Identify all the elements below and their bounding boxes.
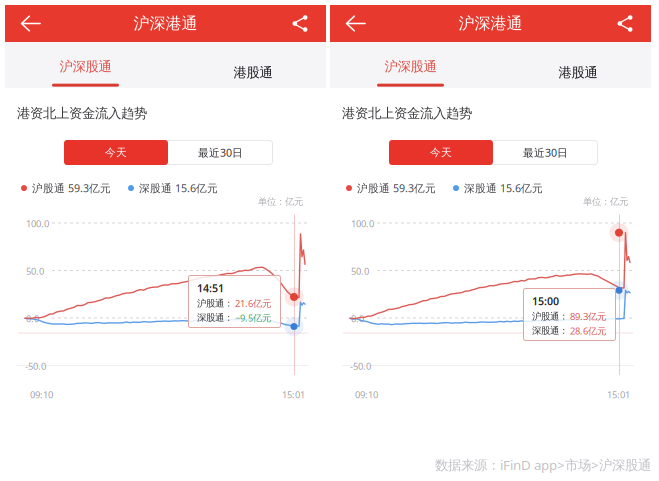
staticText: 50.0 [351, 265, 369, 277]
staticText: 港股通 [233, 64, 272, 81]
button[interactable]: 最近30日 [168, 140, 273, 165]
staticText: 沪深港通 [133, 14, 197, 33]
staticText: 单位：亿元 [583, 196, 628, 207]
button[interactable]: Back [330, 5, 382, 42]
staticText: -50.0 [25, 360, 46, 372]
staticText: 沪深股通 [59, 58, 111, 75]
staticText: 沪深港通 [458, 14, 522, 33]
staticText: 0.0 [351, 312, 364, 325]
staticText: 深股通： [197, 312, 233, 323]
staticText: 50.0 [26, 265, 44, 277]
staticText: 港资北上资金流入趋势 [17, 105, 147, 121]
staticText: 沪深股通 [384, 58, 436, 75]
staticText: 沪股通 59.3亿元 [357, 181, 436, 195]
button[interactable]: Back [5, 5, 57, 42]
staticText: 15:01 [282, 388, 305, 401]
staticText: 沪股通 59.3亿元 [32, 181, 111, 195]
staticText: 沪股通： [197, 298, 233, 309]
staticText: 15:01 [607, 388, 630, 401]
staticText: 港资北上资金流入趋势 [342, 105, 472, 121]
staticText: 0.0 [26, 312, 39, 325]
staticText: 沪股通： [532, 311, 568, 322]
staticText: 89.3亿元 [568, 310, 606, 323]
button[interactable]: 今天 [64, 140, 168, 165]
staticText: 28.6亿元 [568, 325, 606, 337]
staticText: 14:51 [197, 281, 224, 295]
button[interactable]: 沪深股通 [330, 42, 491, 88]
staticText: 15:00 [532, 294, 559, 308]
staticText: 100.0 [26, 217, 49, 230]
button[interactable]: 港股通 [498, 42, 658, 88]
staticText: 今天 [430, 146, 452, 159]
button[interactable]: 港股通 [173, 42, 333, 88]
staticText: -50.0 [350, 360, 371, 372]
staticText: 深股通 15.6亿元 [464, 181, 543, 195]
button[interactable]: Share [274, 5, 326, 42]
staticText: 21.6亿元 [233, 297, 271, 310]
staticText: 深股通 15.6亿元 [139, 181, 218, 195]
staticText: 深股通： [532, 325, 568, 336]
staticText: 100.0 [351, 217, 374, 230]
button[interactable]: 最近30日 [493, 140, 598, 165]
staticText: 09:10 [30, 388, 53, 401]
staticText: 最近30日 [523, 145, 568, 160]
staticText: 港股通 [558, 64, 597, 81]
staticText: 今天 [105, 146, 127, 159]
staticText: 数据来源：iFinD app>市场>沪深股通 [435, 456, 651, 474]
staticText: −9.5亿元 [233, 312, 271, 324]
button[interactable]: 沪深股通 [5, 42, 166, 88]
staticText: 09:10 [355, 388, 378, 401]
button[interactable]: Share [599, 5, 651, 42]
staticText: 最近30日 [198, 145, 243, 160]
button[interactable]: 今天 [389, 140, 493, 165]
staticText: 单位：亿元 [258, 196, 303, 207]
